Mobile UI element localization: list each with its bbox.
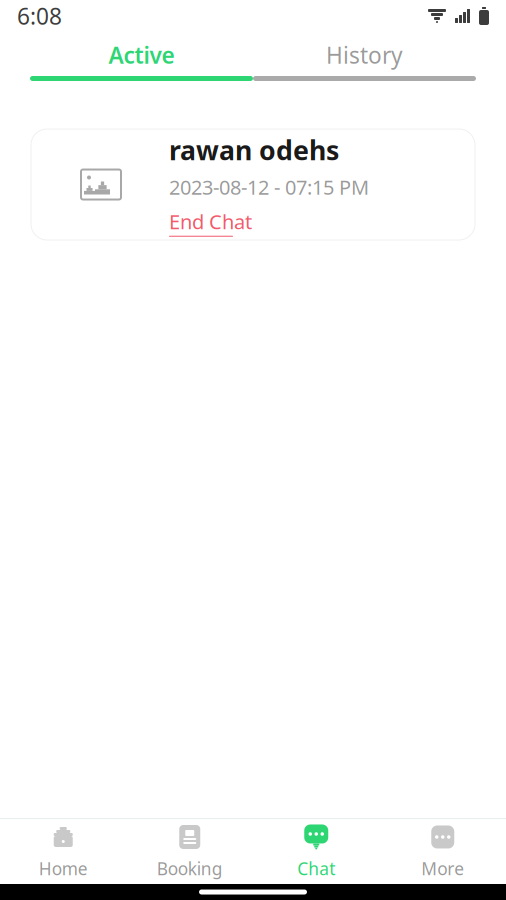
staticText: Booking: [157, 857, 223, 880]
staticText: Chat: [297, 857, 335, 880]
button[interactable]: End Chat: [169, 208, 252, 237]
button[interactable]: Booking: [126, 819, 253, 884]
button[interactable]: Chat: [253, 819, 379, 884]
button[interactable]: rawan odehs: [31, 129, 475, 240]
staticText: rawan odehs: [169, 132, 339, 168]
staticText: More: [421, 857, 464, 880]
staticText: History: [326, 40, 403, 70]
staticText: End Chat: [169, 208, 252, 235]
staticText: 2023-08-12 - 07:15 PM: [169, 174, 369, 200]
button[interactable]: History: [253, 38, 476, 72]
button[interactable]: Home: [0, 819, 126, 884]
button[interactable]: Active: [30, 38, 253, 72]
button[interactable]: More: [379, 819, 506, 884]
staticText: Home: [39, 857, 88, 880]
staticText: Active: [108, 40, 174, 70]
staticText: 6:08: [17, 1, 62, 31]
